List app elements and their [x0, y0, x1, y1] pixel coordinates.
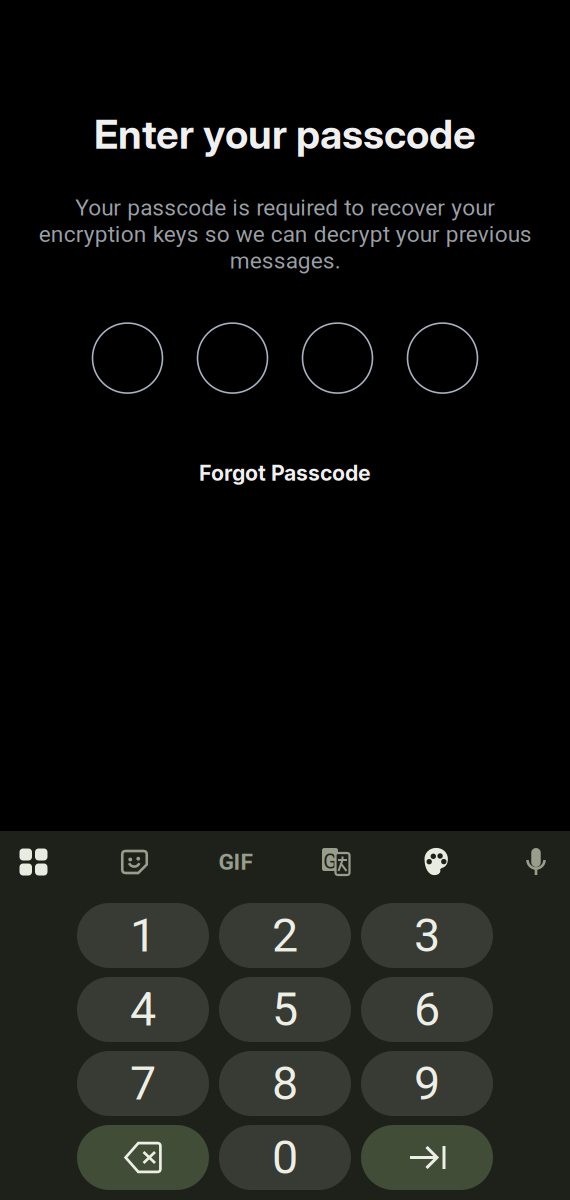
button[interactable]: 8 [219, 1051, 351, 1116]
staticText: Your passcode is required to recover you… [38, 194, 531, 274]
button[interactable]: 2 [219, 903, 351, 968]
button[interactable]: GIF [185, 839, 286, 885]
button[interactable]: Submit [361, 1125, 493, 1190]
staticText: 3 [414, 908, 440, 963]
button[interactable]: Themes [386, 839, 487, 885]
staticText: GIF [218, 849, 252, 875]
staticText: Enter your passcode [94, 110, 476, 158]
button[interactable]: 9 [361, 1051, 493, 1116]
button[interactable]: 7 [77, 1051, 209, 1116]
button[interactable]: 0 [219, 1125, 351, 1190]
button[interactable]: 1 [77, 903, 209, 968]
staticText: 2 [272, 908, 298, 963]
staticText: Forgot Passcode [199, 460, 371, 486]
staticText: 8 [272, 1056, 298, 1111]
staticText: 1 [130, 908, 156, 963]
staticText: 7 [130, 1056, 156, 1111]
button[interactable]: 3 [361, 903, 493, 968]
staticText: 0 [272, 1130, 298, 1185]
staticText: 6 [414, 982, 440, 1037]
button[interactable]: Voice input [502, 839, 570, 885]
button[interactable]: Translate [286, 839, 386, 885]
staticText: 4 [130, 982, 156, 1037]
button[interactable]: 5 [219, 977, 351, 1042]
button[interactable]: Delete [77, 1125, 209, 1190]
button[interactable]: 4 [77, 977, 209, 1042]
staticText: 9 [414, 1056, 440, 1111]
button[interactable]: Keyboards [0, 839, 84, 885]
staticText: G [323, 850, 337, 873]
button[interactable]: Stickers [84, 839, 185, 885]
button[interactable]: 6 [361, 977, 493, 1042]
staticText: 5 [272, 982, 298, 1037]
button[interactable]: Forgot Passcode [185, 450, 385, 496]
